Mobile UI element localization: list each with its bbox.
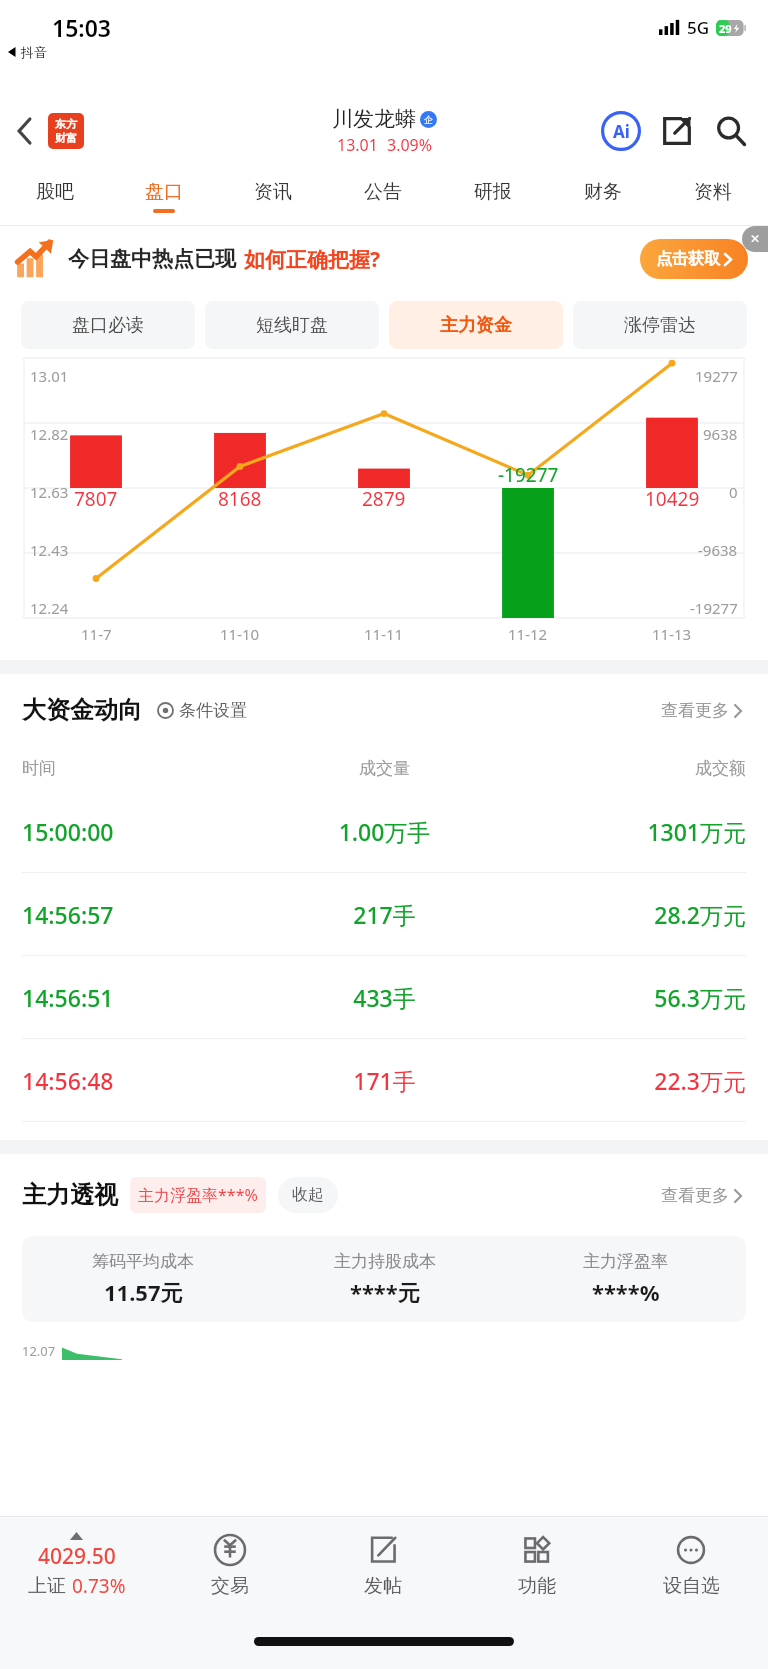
staticText: 14:56:57 <box>22 899 264 930</box>
staticText: -9638 <box>698 540 738 560</box>
button[interactable]: 14:56:48 <box>0 1039 768 1121</box>
button[interactable]: 收起 <box>278 1177 338 1213</box>
staticText: 发帖 <box>364 1574 402 1598</box>
button[interactable]: 资料 <box>658 167 768 225</box>
staticText: 短线盯盘 <box>256 314 328 337</box>
staticText: 东方 <box>55 117 77 131</box>
button[interactable]: East Money home <box>48 113 84 149</box>
staticText: 9638 <box>703 424 738 444</box>
staticText: 12.24 <box>30 598 69 618</box>
staticText: 查看更多 <box>661 1185 729 1206</box>
staticText: 56.3万元 <box>505 982 746 1013</box>
staticText: 成交量 <box>264 758 505 779</box>
staticText: 设自选 <box>663 1574 720 1598</box>
staticText: 15:00:00 <box>22 816 264 847</box>
staticText: 涨停雷达 <box>624 314 696 337</box>
staticText: 盘口必读 <box>72 314 144 337</box>
button[interactable]: 查看更多 <box>657 1181 746 1210</box>
button[interactable]: Back <box>12 113 38 149</box>
button[interactable]: 15:00:00 <box>0 790 768 872</box>
button[interactable]: Close ad <box>742 226 768 252</box>
button[interactable]: 4029.50 <box>0 1517 153 1613</box>
staticText: 13.01 <box>337 134 378 156</box>
button[interactable]: 设自选 <box>614 1517 768 1613</box>
button[interactable]: 交易 <box>153 1517 306 1613</box>
button[interactable]: 主力资金 <box>389 301 563 349</box>
staticText: 1.00万手 <box>264 816 505 847</box>
button[interactable]: Share <box>656 110 698 152</box>
staticText: 433手 <box>264 982 505 1013</box>
staticText: 28.2万元 <box>505 899 746 930</box>
staticText: 筹码平均成本 <box>92 1251 194 1272</box>
staticText: 公告 <box>364 180 402 204</box>
staticText: ****元 <box>350 1277 420 1307</box>
staticText: 财务 <box>584 180 622 204</box>
staticText: 今日盘中热点已现 <box>68 246 236 272</box>
staticText: 13.01 <box>30 366 69 386</box>
staticText: 19277 <box>695 366 738 386</box>
staticText: 主力透视 <box>22 1180 118 1210</box>
button[interactable]: 资讯 <box>218 167 328 225</box>
staticText: 主力资金 <box>440 314 512 337</box>
staticText: 2879 <box>362 486 406 512</box>
button[interactable]: 点击获取 <box>640 239 748 279</box>
button[interactable]: 主力浮盈率***% <box>130 1177 266 1213</box>
button[interactable]: 公告 <box>328 167 438 225</box>
staticText: 15:03 <box>52 12 111 43</box>
staticText: 条件设置 <box>179 700 247 721</box>
staticText: 4029.50 <box>38 1542 116 1571</box>
staticText: 10429 <box>645 486 700 512</box>
button[interactable]: 功能 <box>460 1517 614 1613</box>
staticText: 川发龙蟒 <box>332 106 416 132</box>
staticText: 资讯 <box>254 180 292 204</box>
staticText: 1301万元 <box>505 816 746 847</box>
staticText: 查看更多 <box>661 700 729 721</box>
staticText: 12.43 <box>30 540 69 560</box>
button[interactable]: 盘口必读 <box>21 301 195 349</box>
staticText: 14:56:48 <box>22 1065 264 1096</box>
staticText: 14:56:51 <box>22 982 264 1013</box>
staticText: 功能 <box>518 1574 556 1598</box>
staticText: 财富 <box>55 131 77 145</box>
button[interactable]: 股吧 <box>0 167 109 225</box>
button[interactable]: 14:56:57 <box>0 873 768 955</box>
button[interactable]: 14:56:51 <box>0 956 768 1038</box>
staticText: 12.07 <box>22 1342 56 1360</box>
staticText: -19277 <box>690 598 738 618</box>
button[interactable]: 短线盯盘 <box>205 301 379 349</box>
button[interactable]: 盘口 <box>109 167 218 225</box>
button[interactable]: Search <box>710 110 752 152</box>
staticText: 点击获取 <box>656 249 720 269</box>
staticText: 大资金动向 <box>22 695 142 725</box>
staticText: 研报 <box>474 180 512 204</box>
staticText: 29 <box>719 21 732 36</box>
button[interactable]: 研报 <box>438 167 548 225</box>
button[interactable]: 涨停雷达 <box>573 301 747 349</box>
button[interactable]: 查看更多 <box>657 696 746 725</box>
button[interactable]: 发帖 <box>306 1517 460 1613</box>
staticText: 上证 <box>28 1574 66 1598</box>
staticText: 12.63 <box>30 482 69 502</box>
staticText: 盘口 <box>145 180 183 204</box>
staticText: -19277 <box>498 462 559 488</box>
button[interactable]: AI assistant <box>600 110 642 152</box>
button[interactable]: 今日盘中热点已现 <box>16 226 748 292</box>
staticText: 11-13 <box>652 624 692 644</box>
staticText: 0.73% <box>72 1573 126 1599</box>
staticText: 11.57元 <box>104 1277 183 1307</box>
staticText: 22.3万元 <box>505 1065 746 1096</box>
staticText: 交易 <box>211 1574 249 1598</box>
staticText: 时间 <box>22 758 264 779</box>
staticText: 171手 <box>264 1065 505 1096</box>
staticText: 股吧 <box>36 180 74 204</box>
staticText: ****% <box>592 1277 660 1307</box>
staticText: 主力浮盈率 <box>583 1251 668 1272</box>
staticText: 企 <box>424 114 433 125</box>
staticText: 主力浮盈率***% <box>138 1184 258 1206</box>
button[interactable]: 财务 <box>548 167 658 225</box>
staticText: 11-7 <box>81 624 112 644</box>
staticText: 5G <box>687 16 710 39</box>
button[interactable]: 条件设置 <box>154 697 250 724</box>
staticText: 3.09% <box>387 134 433 156</box>
staticText: 217手 <box>264 899 505 930</box>
